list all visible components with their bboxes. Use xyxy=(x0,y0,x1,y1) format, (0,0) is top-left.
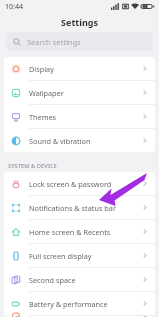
staticText: Settings xyxy=(61,16,98,28)
button[interactable]: Lock screen & password xyxy=(4,172,155,195)
staticText: Second space xyxy=(29,275,143,285)
other: Annotation arrow xyxy=(0,172,159,232)
button[interactable]: Sound & vibration xyxy=(4,129,155,152)
staticText: Display xyxy=(29,64,143,74)
button[interactable]: Home screen & Recents xyxy=(4,220,155,243)
staticText: Wallpaper xyxy=(29,88,143,98)
staticText: SYSTEM & DEVICE xyxy=(8,162,57,170)
staticText: 10:44 xyxy=(5,2,23,12)
button[interactable]: Themes xyxy=(4,105,155,128)
button[interactable]: Search settings xyxy=(6,32,153,51)
button[interactable]: Battery & performance xyxy=(4,292,155,315)
staticText: Themes xyxy=(29,112,143,122)
button[interactable]: Wallpaper xyxy=(4,81,155,104)
staticText: Sound & vibration xyxy=(29,136,143,146)
staticText: Notifications & status bar xyxy=(29,203,143,213)
button[interactable]: Full screen display xyxy=(4,244,155,267)
staticText: Battery & performance xyxy=(29,299,143,309)
button[interactable]: Storage xyxy=(4,316,155,317)
button[interactable]: Notifications & status bar xyxy=(4,196,155,219)
staticText: Full screen display xyxy=(29,251,143,261)
staticText: Lock screen & password xyxy=(29,179,143,189)
button[interactable]: Second space xyxy=(4,268,155,291)
staticText: Search settings xyxy=(27,37,81,47)
staticText: Home screen & Recents xyxy=(29,227,143,237)
button[interactable]: Display xyxy=(4,57,155,80)
